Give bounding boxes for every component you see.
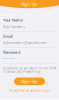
- staticText: Your Name: [3, 17, 23, 23]
- staticText: ••••••: [3, 56, 15, 61]
- staticText: Sign Up: [21, 79, 37, 84]
- button[interactable]: Already have an account? Login: [8, 89, 50, 93]
- button[interactable]: Sign Up: [14, 78, 45, 85]
- staticText: Password: [3, 49, 20, 55]
- staticText: Kyle Sanders: [3, 24, 25, 29]
- staticText: By Signing up you agree to our Terms of …: [3, 66, 56, 74]
- staticText: Email: [3, 33, 13, 39]
- staticText: Sign Up: [21, 1, 37, 6]
- staticText: Already have an account? Login: [8, 89, 50, 93]
- staticText: kylesanders@gmail.com: [3, 40, 47, 45]
